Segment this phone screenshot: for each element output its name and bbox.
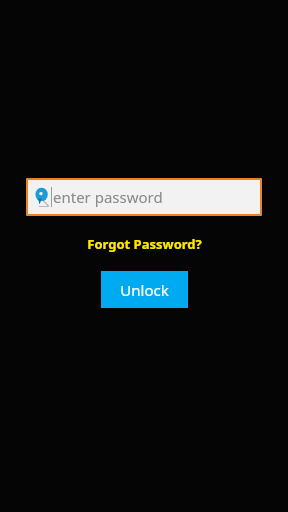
button[interactable]: Unlock [101,271,188,308]
other: Input method [35,187,50,207]
staticText: enter password [53,187,163,207]
staticText: Unlock [120,280,169,300]
staticText: Forgot Password? [87,235,202,253]
button[interactable]: Forgot Password? [81,233,208,255]
button[interactable]: Input method [26,178,262,216]
